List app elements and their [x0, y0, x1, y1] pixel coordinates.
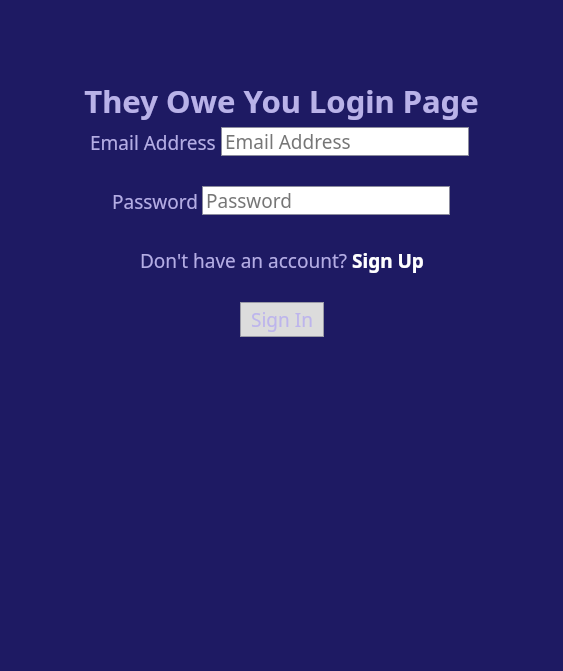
staticText: Sign Up	[352, 248, 424, 274]
button[interactable]: Sign Up	[352, 248, 424, 274]
staticText: Sign In	[251, 307, 313, 333]
staticText: Don't have an account?	[140, 248, 352, 274]
button[interactable]: Password	[202, 186, 450, 215]
button[interactable]: Sign In	[240, 302, 324, 337]
staticText: Email Address	[225, 129, 351, 155]
staticText: Email Address	[90, 130, 216, 156]
staticText: They Owe You Login Page	[84, 80, 479, 122]
button[interactable]: Email Address	[221, 127, 469, 156]
staticText: Password	[206, 188, 292, 214]
staticText: Password	[112, 189, 198, 215]
